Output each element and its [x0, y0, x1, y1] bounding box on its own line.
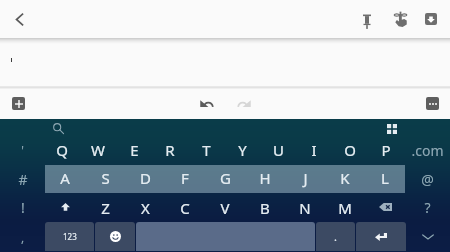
button[interactable]: '	[0, 138, 44, 164]
button[interactable]: Add attachment	[7, 92, 29, 114]
button[interactable]: Shift	[45, 192, 85, 222]
staticText: B	[260, 198, 270, 218]
staticText: L	[381, 168, 389, 188]
button[interactable]: S	[85, 165, 125, 193]
staticText: '	[21, 142, 24, 158]
staticText: S	[101, 168, 110, 188]
staticText: !	[21, 198, 25, 217]
button[interactable]: A	[45, 165, 85, 193]
button[interactable]: U	[260, 138, 296, 164]
button[interactable]: V	[205, 192, 245, 222]
staticText: V	[220, 198, 230, 218]
staticText: I	[311, 140, 317, 160]
staticText: #	[18, 170, 28, 189]
button[interactable]: More options	[421, 92, 443, 114]
staticText: X	[141, 198, 150, 218]
staticText: C	[180, 198, 190, 218]
staticText: P	[381, 140, 391, 160]
button[interactable]: Backspace	[365, 192, 405, 222]
button[interactable]: Pin note	[353, 5, 381, 33]
staticText: W	[91, 140, 105, 160]
button[interactable]: T	[188, 138, 224, 164]
button[interactable]: Emoji	[95, 222, 135, 251]
button[interactable]: E	[116, 138, 152, 164]
button[interactable]: O	[332, 138, 368, 164]
staticText: K	[340, 168, 350, 188]
button[interactable]: Undo	[195, 91, 219, 115]
button[interactable]: K	[325, 165, 365, 193]
button[interactable]: W	[80, 138, 116, 164]
staticText: R	[165, 140, 175, 160]
button[interactable]: M	[325, 192, 365, 222]
button[interactable]: R	[152, 138, 188, 164]
staticText: F	[181, 168, 189, 188]
staticText: U	[273, 140, 284, 160]
button[interactable]: Handwriting	[386, 5, 414, 33]
button[interactable]: Back	[5, 5, 33, 33]
button[interactable]: Redo	[232, 91, 256, 115]
staticText: O	[344, 140, 356, 160]
staticText: H	[259, 168, 271, 188]
button[interactable]: Z	[85, 192, 125, 222]
staticText: M	[338, 198, 352, 218]
button[interactable]: .com	[404, 138, 450, 164]
staticText: .	[334, 229, 337, 244]
button[interactable]: B	[245, 192, 285, 222]
button[interactable]: Hide keyboard	[406, 222, 450, 252]
button[interactable]: Enter	[356, 222, 406, 251]
button[interactable]: .	[316, 222, 355, 251]
staticText: Y	[238, 140, 247, 160]
button[interactable]: F	[165, 165, 205, 193]
staticText: .com	[411, 141, 444, 160]
button[interactable]: N	[285, 192, 325, 222]
staticText: ,	[21, 229, 25, 245]
button[interactable]: Y	[224, 138, 260, 164]
button[interactable]: J	[285, 165, 325, 193]
staticText: E	[130, 140, 139, 160]
staticText: D	[140, 168, 151, 188]
button[interactable]: @	[405, 164, 450, 192]
staticText: G	[220, 168, 231, 188]
button[interactable]: ?	[405, 192, 450, 222]
staticText: Z	[101, 198, 110, 218]
staticText: Q	[56, 140, 68, 160]
button[interactable]: !	[0, 192, 45, 222]
button[interactable]: H	[245, 165, 285, 193]
staticText: @	[421, 170, 434, 189]
button[interactable]: Save note	[417, 5, 445, 33]
staticText: 123	[63, 231, 77, 242]
button[interactable]: Q	[44, 138, 80, 164]
button[interactable]: C	[165, 192, 205, 222]
staticText: T	[202, 140, 211, 160]
button[interactable]: ,	[0, 222, 45, 252]
button[interactable]: D	[125, 165, 165, 193]
button[interactable]: L	[365, 165, 405, 193]
button[interactable]: X	[125, 192, 165, 222]
button[interactable]: P	[368, 138, 404, 164]
button[interactable]: #	[0, 164, 45, 192]
staticText: J	[303, 168, 308, 188]
staticText: ?	[424, 198, 431, 217]
button[interactable]: G	[205, 165, 245, 193]
button[interactable]: 123	[45, 222, 94, 251]
staticText: N	[299, 198, 311, 218]
button[interactable]: Keyboard apps	[382, 119, 402, 138]
staticText: A	[60, 168, 70, 188]
button[interactable]: Search	[48, 119, 68, 138]
button[interactable]: I	[296, 138, 332, 164]
